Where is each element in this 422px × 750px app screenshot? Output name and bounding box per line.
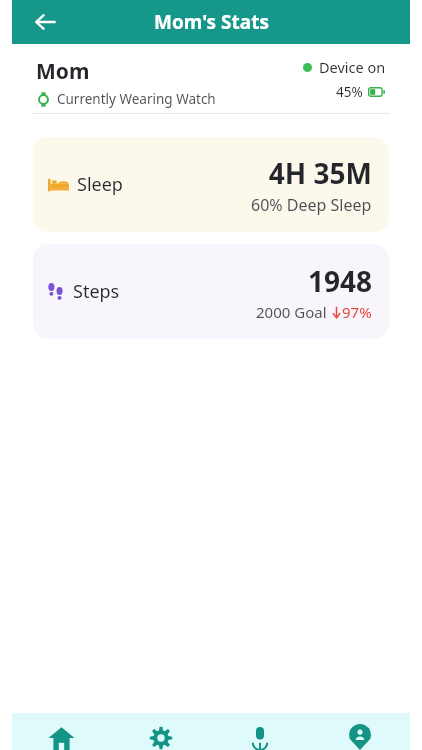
staticText: 4H 35M	[268, 154, 372, 192]
staticText: Mom	[36, 57, 90, 86]
button[interactable]: Sleep	[33, 137, 389, 232]
staticText: 1948	[307, 262, 372, 300]
button[interactable]: Location	[310, 713, 410, 750]
staticText: Device on	[319, 57, 386, 77]
button[interactable]: Settings	[111, 713, 210, 750]
staticText: 60% Deep Sleep	[251, 194, 372, 216]
staticText: Sleep	[77, 172, 123, 197]
staticText: 45%	[336, 83, 363, 101]
staticText: 2000 Goal	[256, 302, 327, 322]
staticText: Mom's Stats	[154, 9, 269, 35]
staticText: Currently Wearing Watch	[57, 90, 216, 108]
button[interactable]: Home	[12, 713, 111, 750]
button[interactable]: Steps	[33, 244, 389, 339]
staticText: Steps	[73, 279, 120, 304]
button[interactable]: Back	[26, 2, 66, 42]
button[interactable]: Voice	[210, 713, 310, 750]
staticText: 97%	[342, 302, 372, 322]
